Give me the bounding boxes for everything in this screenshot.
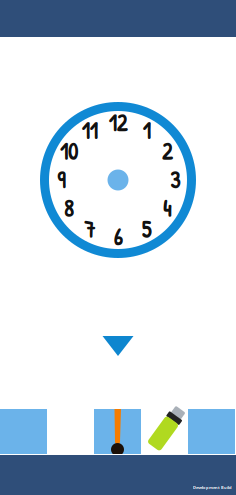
staticText: 1 — [142, 115, 150, 146]
button[interactable]: Collapse — [102, 336, 133, 356]
staticText: 8 — [64, 193, 74, 224]
staticText: 6 — [113, 222, 122, 252]
staticText: 10 — [60, 136, 78, 167]
button[interactable]: Marker — [141, 409, 188, 454]
staticText: Development Build — [193, 485, 232, 490]
staticText: 5 — [141, 214, 151, 245]
staticText: 7 — [84, 214, 95, 245]
staticText: 3 — [170, 165, 180, 195]
button[interactable]: Clock hand — [94, 409, 141, 454]
staticText: 2 — [162, 136, 173, 167]
staticText: 12 — [108, 108, 127, 138]
staticText: 11 — [81, 115, 97, 146]
staticText: 4 — [163, 193, 172, 224]
staticText: 9 — [57, 165, 65, 195]
